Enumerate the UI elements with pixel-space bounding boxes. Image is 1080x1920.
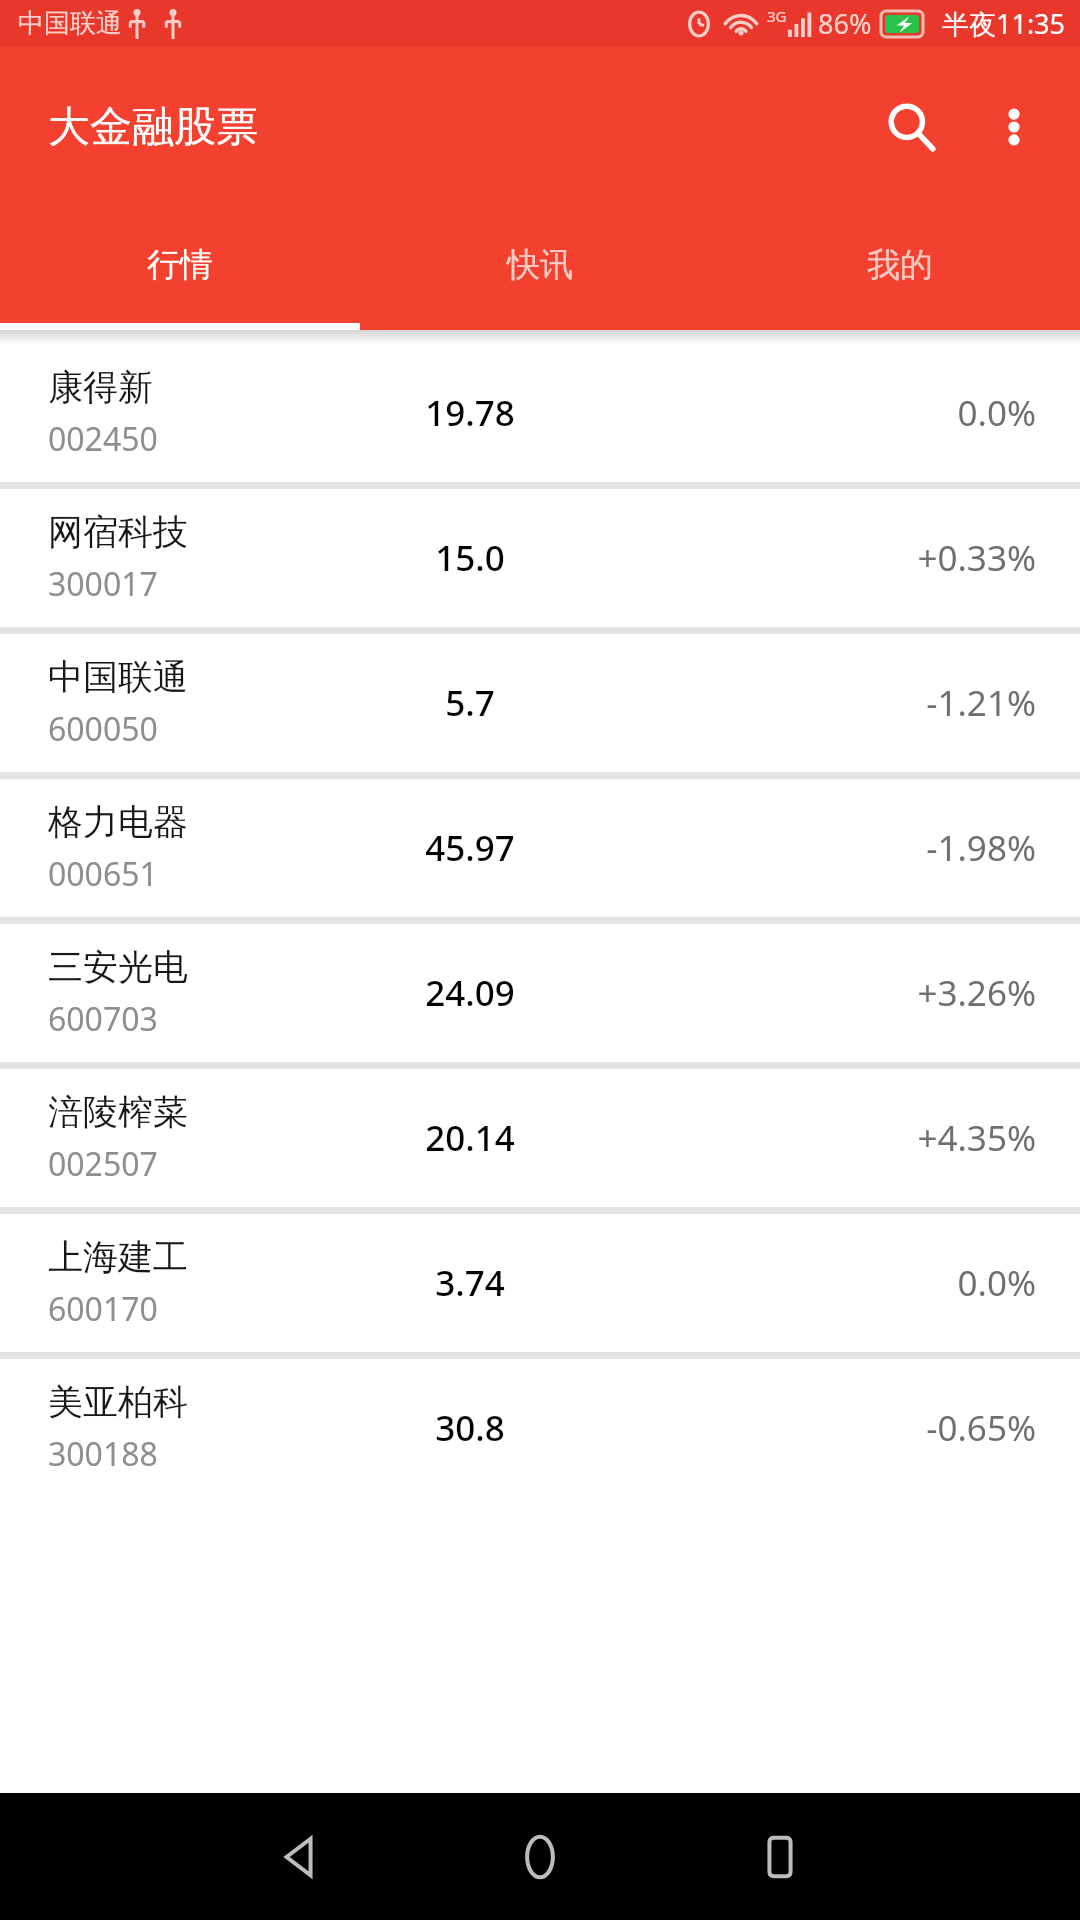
staticText: +0.33% [917, 534, 1036, 582]
staticText: 19.78 [425, 389, 515, 437]
staticText: 002450 [48, 417, 158, 461]
staticText: 上海建工 [48, 1235, 188, 1279]
staticText: 24.09 [425, 969, 515, 1017]
staticText: 600703 [48, 997, 158, 1041]
staticText: -1.21% [926, 679, 1036, 727]
staticText: 20.14 [425, 1114, 515, 1162]
staticText: 300188 [48, 1432, 158, 1476]
staticText: 300017 [48, 562, 158, 606]
button[interactable]: 我的 [720, 207, 1080, 323]
staticText: 格力电器 [48, 800, 188, 844]
button[interactable]: Search [856, 72, 966, 182]
button[interactable]: 格力电器 [0, 779, 1080, 917]
staticText: 三安光电 [48, 945, 188, 989]
staticText: 大金融股票 [48, 101, 258, 154]
staticText: 45.97 [425, 824, 515, 872]
staticText: 美亚柏科 [48, 1380, 188, 1424]
staticText: 002507 [48, 1142, 158, 1186]
button[interactable]: 网宿科技 [0, 489, 1080, 627]
button[interactable]: 康得新 [0, 344, 1080, 482]
staticText: 快讯 [507, 244, 573, 286]
button[interactable]: 快讯 [360, 207, 720, 323]
staticText: -1.98% [926, 824, 1036, 872]
staticText: 3G [767, 6, 787, 26]
staticText: 中国联通 [48, 655, 188, 699]
staticText: 网宿科技 [48, 510, 188, 554]
staticText: +3.26% [917, 969, 1036, 1017]
staticText: 15.0 [435, 534, 505, 582]
staticText: 0.0% [957, 389, 1036, 437]
staticText: -0.65% [926, 1404, 1036, 1452]
button[interactable]: 中国联通 [0, 634, 1080, 772]
staticText: 600170 [48, 1287, 158, 1331]
staticText: 86% [818, 5, 872, 42]
button[interactable]: 行情 [0, 207, 360, 323]
staticText: 000651 [48, 852, 158, 896]
staticText: +4.35% [917, 1114, 1036, 1162]
staticText: 涪陵榨菜 [48, 1090, 188, 1134]
button[interactable]: 美亚柏科 [0, 1359, 1080, 1497]
staticText: 5.7 [445, 679, 495, 727]
staticText: 600050 [48, 707, 158, 751]
button[interactable]: Back [240, 1797, 360, 1917]
staticText: 3.74 [435, 1259, 505, 1307]
staticText: 中国联通 [18, 7, 122, 40]
staticText: 我的 [867, 244, 933, 286]
button[interactable]: 涪陵榨菜 [0, 1069, 1080, 1207]
staticText: 行情 [147, 244, 213, 286]
button[interactable]: Home [480, 1797, 600, 1917]
staticText: 30.8 [435, 1404, 505, 1452]
button[interactable]: More options [966, 79, 1062, 175]
staticText: 康得新 [48, 365, 153, 409]
button[interactable]: 三安光电 [0, 924, 1080, 1062]
staticText: 0.0% [957, 1259, 1036, 1307]
staticText: 半夜11:35 [942, 5, 1066, 42]
button[interactable]: Recents [720, 1797, 840, 1917]
button[interactable]: 上海建工 [0, 1214, 1080, 1352]
